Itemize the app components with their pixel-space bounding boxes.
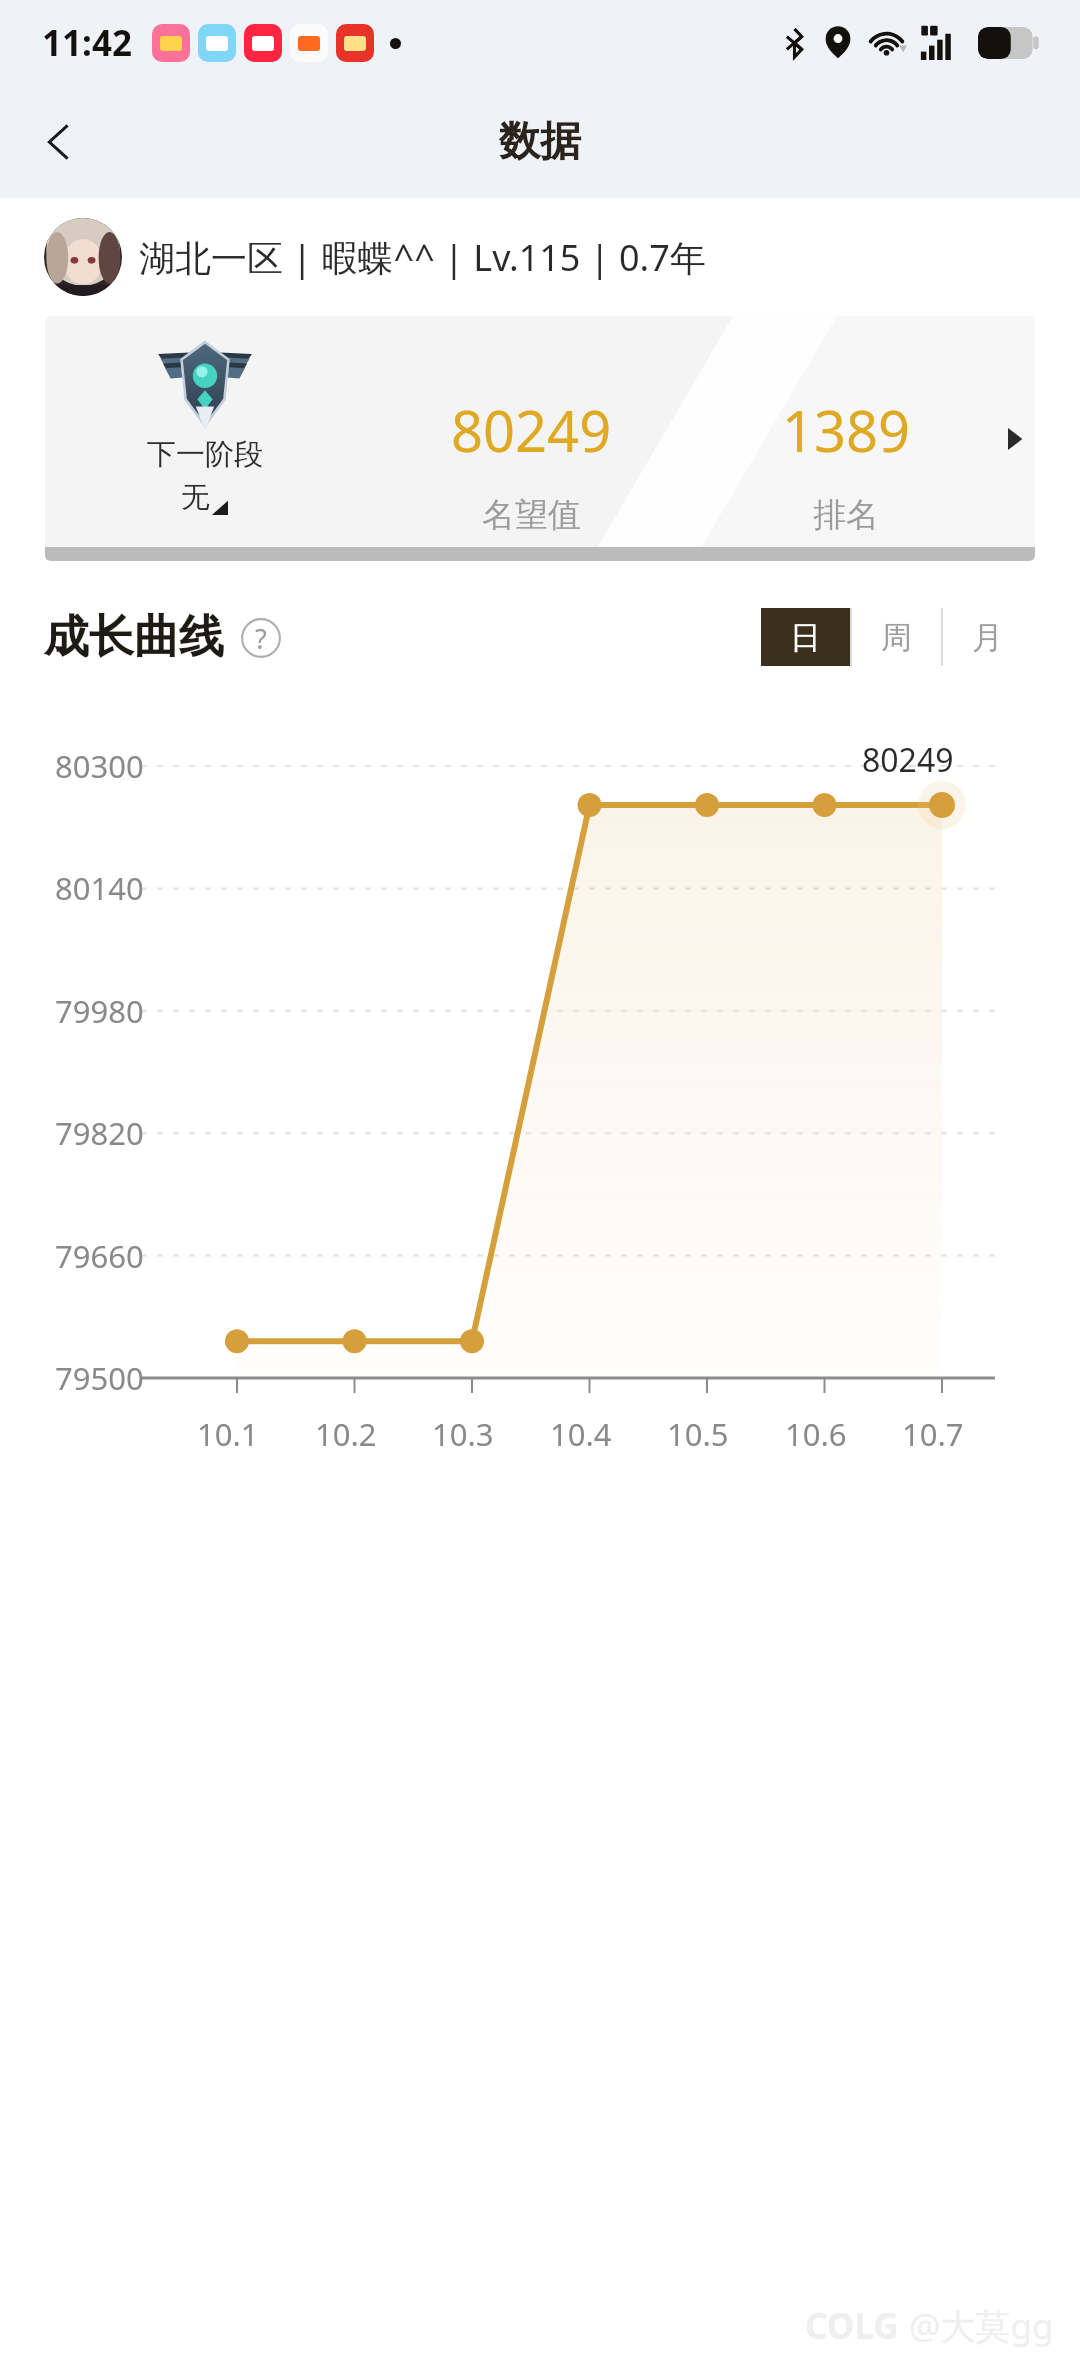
staticText: @大莫gg	[909, 2302, 1054, 2350]
staticText: 数据	[499, 116, 581, 168]
button[interactable]: 月	[943, 608, 1032, 666]
staticText: COLG	[805, 2302, 899, 2350]
staticText: 无	[181, 479, 210, 516]
staticText: 名望值	[482, 494, 581, 536]
staticText: 80300	[55, 745, 144, 787]
staticText: 80249	[451, 392, 612, 468]
staticText: 排名	[813, 494, 879, 536]
staticText: ?	[255, 620, 267, 657]
button[interactable]: Help	[240, 617, 282, 659]
staticText: 10.3	[432, 1413, 494, 1455]
staticText: 周	[881, 618, 912, 657]
button[interactable]: 日	[761, 608, 850, 666]
button[interactable]: 周	[852, 608, 941, 666]
staticText: 11:42	[42, 19, 132, 67]
staticText: 下一阶段	[147, 436, 263, 473]
staticText: 10.5	[667, 1413, 729, 1455]
staticText: 80249	[862, 738, 954, 782]
button[interactable]: 湖北一区 | 暇蝶^^ | Lv.115 | 0.7年	[0, 198, 1080, 316]
staticText: 10.6	[785, 1413, 847, 1455]
staticText: 月	[972, 618, 1003, 657]
staticText: 79980	[55, 990, 144, 1032]
staticText: 80140	[55, 867, 144, 909]
staticText: 日	[790, 618, 821, 657]
staticText: 成长曲线	[44, 609, 224, 666]
staticText: 10.1	[197, 1413, 259, 1455]
staticText: 79660	[55, 1235, 144, 1277]
staticText: 1389	[782, 392, 911, 468]
staticText: 10.4	[550, 1413, 612, 1455]
staticText: 湖北一区 | 暇蝶^^ | Lv.115 | 0.7年	[139, 233, 706, 282]
button[interactable]: Back	[16, 98, 104, 186]
staticText: 10.7	[902, 1413, 964, 1455]
staticText: 79820	[55, 1112, 144, 1154]
staticText: 10.2	[315, 1413, 377, 1455]
staticText: 79500	[55, 1357, 144, 1399]
button[interactable]: 下一阶段	[45, 316, 1035, 561]
